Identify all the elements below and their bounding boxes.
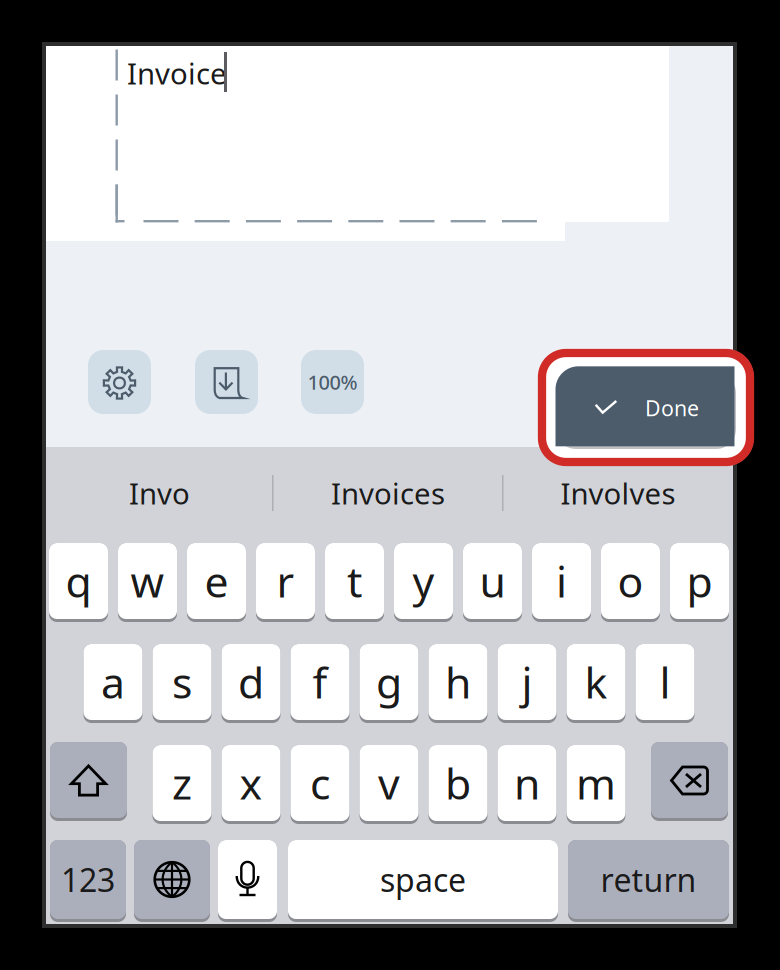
staticText: x bbox=[239, 755, 262, 811]
staticText: return bbox=[600, 858, 696, 901]
staticText: d bbox=[238, 654, 264, 710]
staticText: v bbox=[378, 755, 400, 811]
staticText: t bbox=[347, 553, 362, 609]
button[interactable]: l bbox=[635, 644, 694, 723]
button[interactable]: s bbox=[152, 644, 211, 723]
button[interactable]: d bbox=[221, 644, 280, 723]
button[interactable]: j bbox=[497, 644, 556, 723]
staticText: i bbox=[556, 553, 567, 609]
staticText: Invoices bbox=[331, 473, 445, 512]
button[interactable]: Dictate bbox=[218, 840, 277, 922]
staticText: l bbox=[659, 654, 670, 710]
staticText: r bbox=[276, 553, 294, 609]
button[interactable]: 123 bbox=[50, 840, 126, 922]
button[interactable]: n bbox=[497, 745, 556, 824]
button[interactable]: space bbox=[288, 840, 558, 922]
button[interactable]: a bbox=[83, 644, 142, 723]
button[interactable]: x bbox=[221, 745, 280, 824]
staticText: u bbox=[479, 553, 505, 609]
button[interactable]: c bbox=[290, 745, 349, 824]
button[interactable]: u bbox=[463, 543, 522, 622]
staticText: j bbox=[521, 654, 532, 710]
staticText: p bbox=[686, 553, 712, 609]
button[interactable]: Done bbox=[0, 0, 780, 970]
button[interactable]: z bbox=[152, 745, 211, 824]
staticText: s bbox=[172, 654, 192, 710]
staticText: Invo bbox=[129, 473, 190, 512]
button[interactable]: Delete bbox=[651, 742, 728, 821]
button[interactable]: q bbox=[49, 543, 108, 622]
button[interactable]: k bbox=[566, 644, 625, 723]
staticText: space bbox=[380, 858, 466, 901]
staticText: c bbox=[310, 755, 330, 811]
staticText: b bbox=[445, 755, 471, 811]
button[interactable]: f bbox=[290, 644, 349, 723]
staticText: Invoice bbox=[127, 53, 227, 92]
button[interactable]: Involves bbox=[504, 462, 732, 524]
button[interactable]: return bbox=[568, 840, 729, 922]
button[interactable]: v bbox=[359, 745, 418, 824]
button[interactable]: e bbox=[187, 543, 246, 622]
staticText: a bbox=[101, 654, 125, 710]
button[interactable]: t bbox=[325, 543, 384, 622]
staticText: y bbox=[412, 553, 434, 609]
button[interactable]: g bbox=[359, 644, 418, 723]
staticText: g bbox=[376, 654, 402, 710]
button[interactable]: Next keyboard bbox=[134, 840, 210, 922]
staticText: Done bbox=[645, 394, 699, 422]
staticText: f bbox=[312, 654, 327, 710]
button[interactable]: Settings bbox=[88, 350, 151, 414]
button[interactable]: m bbox=[566, 745, 625, 824]
staticText: z bbox=[172, 755, 192, 811]
button[interactable]: Insert page break bbox=[195, 350, 258, 414]
button[interactable]: b bbox=[428, 745, 487, 824]
button[interactable]: Invoices bbox=[274, 462, 502, 524]
staticText: 100% bbox=[307, 369, 357, 395]
staticText: e bbox=[204, 553, 228, 609]
staticText: o bbox=[617, 553, 643, 609]
staticText: n bbox=[514, 755, 540, 811]
staticText: Involves bbox=[560, 473, 675, 512]
button[interactable]: Shift bbox=[50, 742, 127, 821]
staticText: m bbox=[576, 755, 616, 811]
staticText: q bbox=[65, 553, 91, 609]
button[interactable]: y bbox=[394, 543, 453, 622]
button[interactable]: i bbox=[532, 543, 591, 622]
button[interactable]: Invo bbox=[48, 462, 271, 524]
button[interactable]: w bbox=[118, 543, 177, 622]
button[interactable]: h bbox=[428, 644, 487, 723]
button[interactable]: 100% bbox=[301, 350, 364, 414]
staticText: k bbox=[584, 654, 607, 710]
button[interactable]: o bbox=[601, 543, 660, 622]
button[interactable]: p bbox=[670, 543, 729, 622]
staticText: h bbox=[445, 654, 471, 710]
staticText: 123 bbox=[61, 858, 115, 901]
staticText: w bbox=[130, 553, 164, 609]
button[interactable]: r bbox=[256, 543, 315, 622]
